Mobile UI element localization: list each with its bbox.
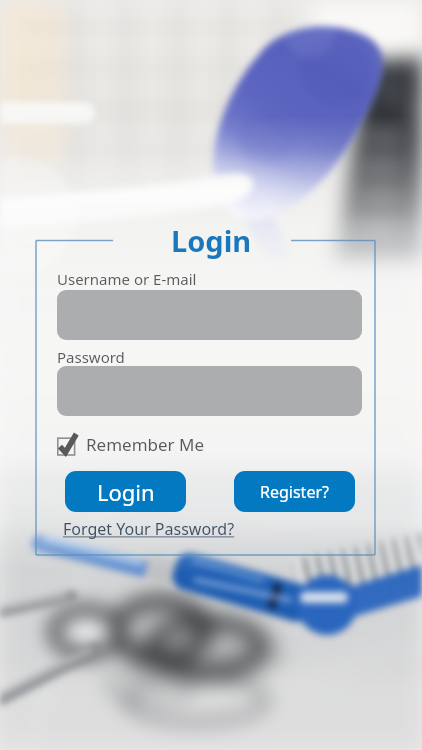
staticText: Register? <box>260 481 329 503</box>
staticText: Username or E-mail <box>57 269 197 289</box>
staticText: Forget Your Password? <box>63 518 235 540</box>
staticText: Password <box>57 347 125 367</box>
button[interactable] <box>57 366 362 416</box>
button[interactable]: Remember Me <box>57 433 205 456</box>
button[interactable] <box>57 290 362 340</box>
staticText: Login <box>97 477 155 507</box>
button[interactable]: Register? <box>234 471 355 512</box>
button[interactable]: Login <box>65 471 186 512</box>
staticText: Remember Me <box>86 433 205 456</box>
staticText: Login <box>171 221 252 260</box>
button[interactable]: Forget Your Password? <box>63 518 235 540</box>
